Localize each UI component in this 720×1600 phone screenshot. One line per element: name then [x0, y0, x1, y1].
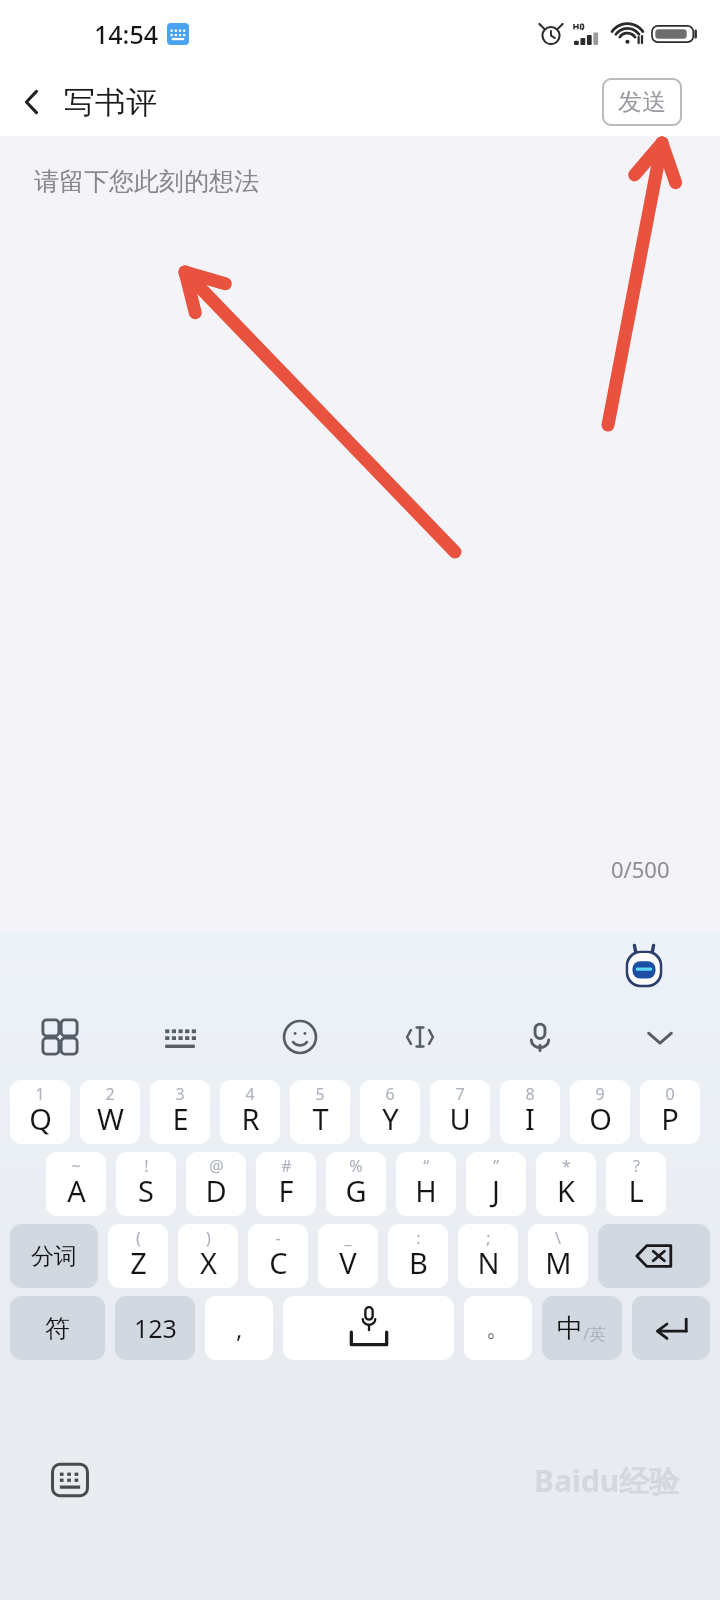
staticText: P [661, 1099, 679, 1138]
staticText: L [628, 1171, 644, 1210]
button[interactable]: Switch keyboard [44, 1454, 96, 1506]
staticText: W [97, 1099, 124, 1138]
button[interactable]: 8 [500, 1080, 560, 1144]
staticText: 9 [595, 1083, 605, 1105]
staticText: 3 [175, 1083, 185, 1105]
button[interactable]: Assistant [620, 943, 668, 991]
button[interactable]: Apps [0, 1002, 120, 1072]
staticText: ; [486, 1227, 491, 1249]
button[interactable]: 2 [80, 1080, 140, 1144]
staticText: @ [209, 1155, 224, 1177]
button[interactable]: : [388, 1224, 448, 1288]
staticText: * [562, 1155, 571, 1177]
staticText: ~ [71, 1155, 81, 1177]
staticText: N [477, 1243, 500, 1282]
button[interactable]: 发送 [602, 78, 682, 126]
button[interactable]: # [256, 1152, 316, 1216]
staticText: F [278, 1171, 294, 1210]
button[interactable]: 6 [360, 1080, 420, 1144]
staticText: H [415, 1171, 437, 1210]
button[interactable]: 7 [430, 1080, 490, 1144]
staticText: G [345, 1171, 367, 1210]
staticText: /英 [583, 1322, 607, 1345]
staticText: B [409, 1243, 428, 1282]
staticText: 0/500 [611, 854, 670, 884]
staticText: U [449, 1099, 471, 1138]
button[interactable]: _ [318, 1224, 378, 1288]
staticText: D [205, 1171, 227, 1210]
button[interactable]: 4 [220, 1080, 280, 1144]
staticText: \ [555, 1227, 561, 1249]
staticText: A [67, 1171, 86, 1210]
button[interactable]: 1 [10, 1080, 70, 1144]
button[interactable]: - [248, 1224, 308, 1288]
staticText: 1 [35, 1083, 45, 1105]
button[interactable]: ” [466, 1152, 526, 1216]
button[interactable]: Voice input [480, 1002, 600, 1072]
staticText: 4 [245, 1083, 255, 1105]
button[interactable]: Enter [632, 1296, 710, 1360]
button[interactable]: 。 [464, 1296, 532, 1360]
staticText: J [492, 1171, 500, 1210]
staticText: M [545, 1243, 572, 1282]
staticText: “ [423, 1155, 429, 1177]
button[interactable]: Emoji [240, 1002, 360, 1072]
staticText: ” [493, 1155, 499, 1177]
staticText: , [236, 1312, 243, 1345]
button[interactable]: 分词 [10, 1224, 98, 1288]
staticText: 5 [315, 1083, 325, 1105]
staticText: Y [382, 1099, 399, 1138]
button[interactable]: \ [528, 1224, 588, 1288]
staticText: Baidu经验 [534, 1460, 680, 1501]
staticText: Z [130, 1243, 147, 1282]
button[interactable]: ! [116, 1152, 176, 1216]
staticText: O [589, 1099, 612, 1138]
button[interactable]: , [205, 1296, 273, 1360]
button[interactable]: ; [458, 1224, 518, 1288]
staticText: 8 [525, 1083, 535, 1105]
button[interactable]: Hide keyboard [600, 1002, 720, 1072]
button[interactable]: ) [178, 1224, 238, 1288]
staticText: _ [344, 1227, 352, 1249]
button[interactable]: 符 [10, 1296, 105, 1360]
button[interactable]: “ [396, 1152, 456, 1216]
staticText: 2 [105, 1083, 115, 1105]
button[interactable]: Text edit [360, 1002, 480, 1072]
staticText: I [525, 1099, 535, 1138]
button[interactable]: @ [186, 1152, 246, 1216]
staticText: C [269, 1243, 288, 1282]
button[interactable]: ( [108, 1224, 168, 1288]
button[interactable]: * [536, 1152, 596, 1216]
button[interactable]: Backspace [598, 1224, 710, 1288]
staticText: 符 [45, 1313, 70, 1344]
button[interactable]: 0 [640, 1080, 700, 1144]
staticText: V [339, 1243, 357, 1282]
staticText: T [312, 1099, 329, 1138]
button[interactable]: Keyboard layout [120, 1002, 240, 1072]
staticText: 14:54 [94, 17, 159, 51]
button[interactable]: 5 [290, 1080, 350, 1144]
button[interactable]: ~ [46, 1152, 106, 1216]
staticText: 123 [134, 1311, 177, 1345]
button[interactable]: ? [606, 1152, 666, 1216]
staticText: 7 [455, 1083, 465, 1105]
button[interactable]: % [326, 1152, 386, 1216]
staticText: 中 [557, 1312, 583, 1345]
staticText: 0 [665, 1083, 675, 1105]
button[interactable]: 9 [570, 1080, 630, 1144]
staticText: : [416, 1227, 421, 1249]
button[interactable]: 中 [542, 1296, 622, 1360]
staticText: # [281, 1155, 292, 1177]
button[interactable]: Space [283, 1296, 454, 1360]
staticText: 请留下您此刻的想法 [34, 166, 259, 197]
staticText: 。 [486, 1313, 510, 1343]
button[interactable]: 123 [115, 1296, 195, 1360]
staticText: S [138, 1171, 154, 1210]
staticText: ! [144, 1155, 149, 1177]
staticText: 写书评 [64, 83, 157, 122]
staticText: ? [633, 1155, 640, 1177]
button[interactable]: Back [0, 70, 64, 134]
button[interactable]: 3 [150, 1080, 210, 1144]
staticText: ) [206, 1227, 211, 1249]
staticText: % [349, 1155, 363, 1177]
